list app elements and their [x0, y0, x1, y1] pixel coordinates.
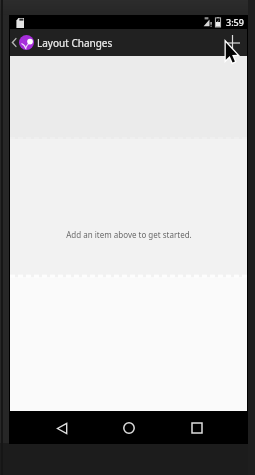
- staticText: 3:59: [226, 16, 244, 28]
- staticText: Add an item above to get started.: [66, 229, 192, 240]
- button[interactable]: Add: [219, 29, 246, 56]
- button[interactable]: Home: [109, 412, 149, 444]
- button[interactable]: Navigate up: [10, 29, 17, 56]
- button[interactable]: Back: [42, 412, 82, 444]
- staticText: Layout Changes: [37, 36, 113, 50]
- button[interactable]: Recent apps: [177, 412, 217, 444]
